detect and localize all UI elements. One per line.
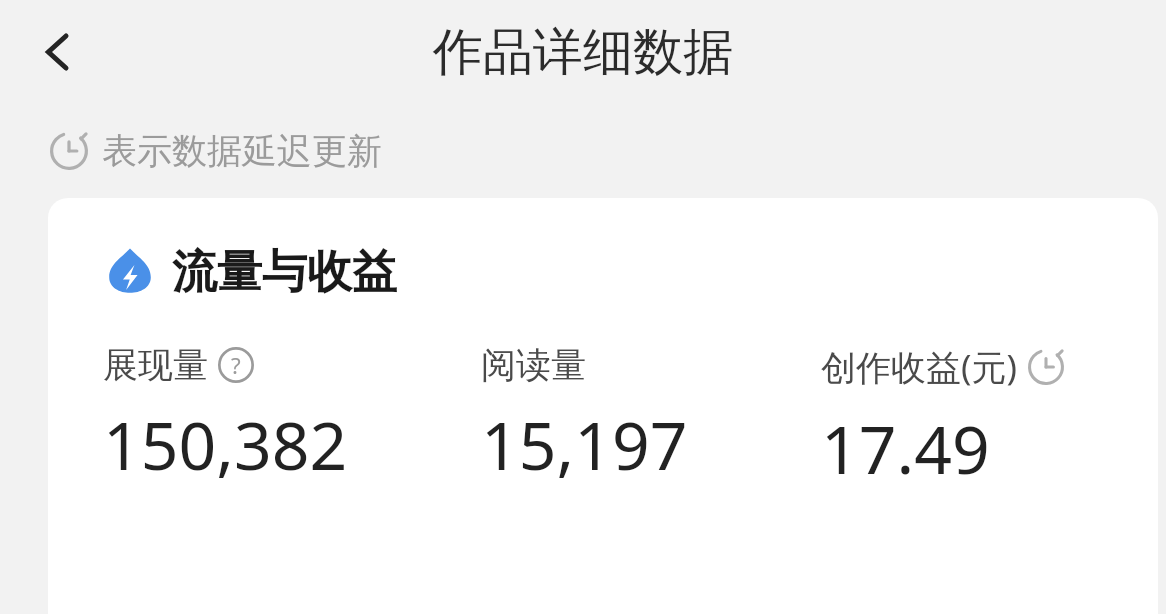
button[interactable]: 流量与收益 (48, 198, 1158, 614)
staticText: 阅读量 (481, 343, 586, 387)
staticText: ? (231, 350, 241, 380)
staticText: 表示数据延迟更新 (102, 129, 382, 173)
staticText: 17.49 (821, 403, 990, 493)
button[interactable]: 返回 (22, 16, 94, 88)
staticText: 150,382 (103, 399, 348, 489)
button[interactable]: 展现量 (103, 343, 481, 489)
button[interactable]: 创作收益(元) (821, 343, 1151, 493)
staticText: 流量与收益 (172, 244, 397, 301)
staticText: 作品详细数据 (433, 21, 733, 84)
staticText: 展现量 (103, 343, 208, 387)
staticText: 创作收益(元) (821, 343, 1018, 391)
button[interactable]: 阅读量 (481, 343, 821, 489)
staticText: 15,197 (481, 399, 688, 489)
button[interactable]: 帮助说明 (218, 347, 254, 383)
